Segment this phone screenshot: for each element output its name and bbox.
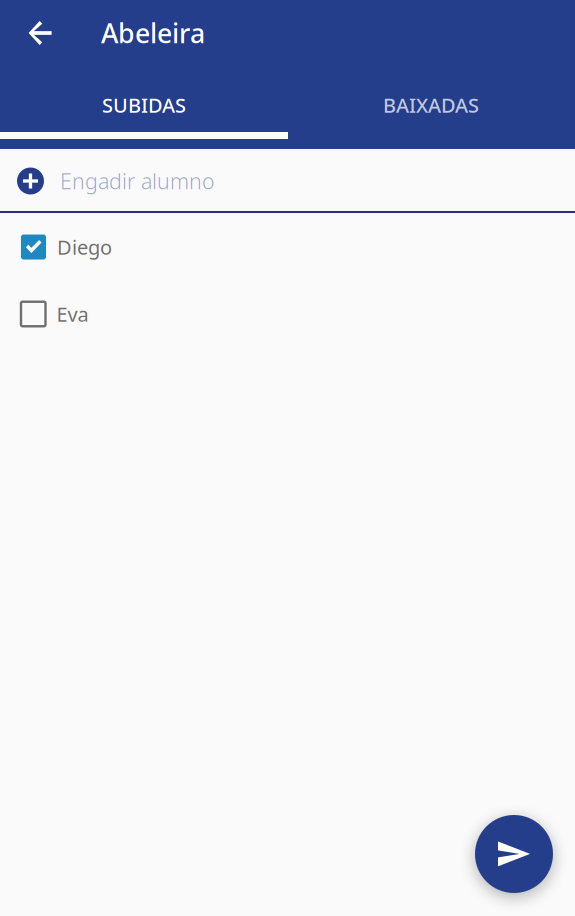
button[interactable]: Engadir alumno <box>0 150 575 212</box>
staticText: SUBIDAS <box>102 92 186 118</box>
button[interactable]: Diego <box>0 216 575 278</box>
staticText: Diego <box>57 234 112 260</box>
button[interactable]: Eva <box>0 283 575 345</box>
staticText: Abeleira <box>101 15 205 51</box>
staticText: Eva <box>56 301 88 327</box>
button[interactable]: Back <box>12 5 68 61</box>
button[interactable]: SUBIDAS <box>0 75 287 135</box>
button[interactable]: BAIXADAS <box>287 75 575 135</box>
button[interactable]: Send <box>475 815 553 893</box>
staticText: Engadir alumno <box>60 167 215 195</box>
staticText: BAIXADAS <box>383 92 479 118</box>
